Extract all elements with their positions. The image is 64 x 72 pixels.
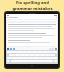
- button[interactable]: [7, 60, 10, 62]
- button[interactable]: [22, 57, 27, 59]
- button[interactable]: [39, 57, 45, 59]
- button[interactable]: [45, 57, 51, 59]
- button[interactable]: [45, 54, 50, 56]
- button[interactable]: [42, 51, 47, 53]
- button[interactable]: Correct: [7, 48, 9, 50]
- button[interactable]: [25, 54, 30, 56]
- button[interactable]: [27, 51, 32, 53]
- button[interactable]: [30, 54, 35, 56]
- button[interactable]: [27, 57, 33, 59]
- button[interactable]: [51, 57, 57, 59]
- button[interactable]: [9, 54, 15, 56]
- button[interactable]: [20, 54, 25, 56]
- button[interactable]: [40, 54, 45, 56]
- button[interactable]: [37, 51, 42, 53]
- button[interactable]: [52, 51, 57, 53]
- button[interactable]: Back: [6, 16, 58, 19]
- button[interactable]: [12, 51, 17, 53]
- button[interactable]: [17, 57, 22, 59]
- button[interactable]: [50, 54, 55, 56]
- button[interactable]: [7, 20, 57, 46]
- button[interactable]: [17, 51, 22, 53]
- button[interactable]: [54, 60, 57, 62]
- button[interactable]: [12, 57, 17, 59]
- button[interactable]: [7, 57, 12, 59]
- button[interactable]: [35, 54, 40, 56]
- button[interactable]: [7, 51, 12, 53]
- button[interactable]: [33, 57, 39, 59]
- button[interactable]: [15, 54, 20, 56]
- staticText: Fix spelling and grammar mistakes: [12, 0, 53, 11]
- button[interactable]: [47, 51, 52, 53]
- button[interactable]: [22, 51, 27, 53]
- button[interactable]: [32, 51, 37, 53]
